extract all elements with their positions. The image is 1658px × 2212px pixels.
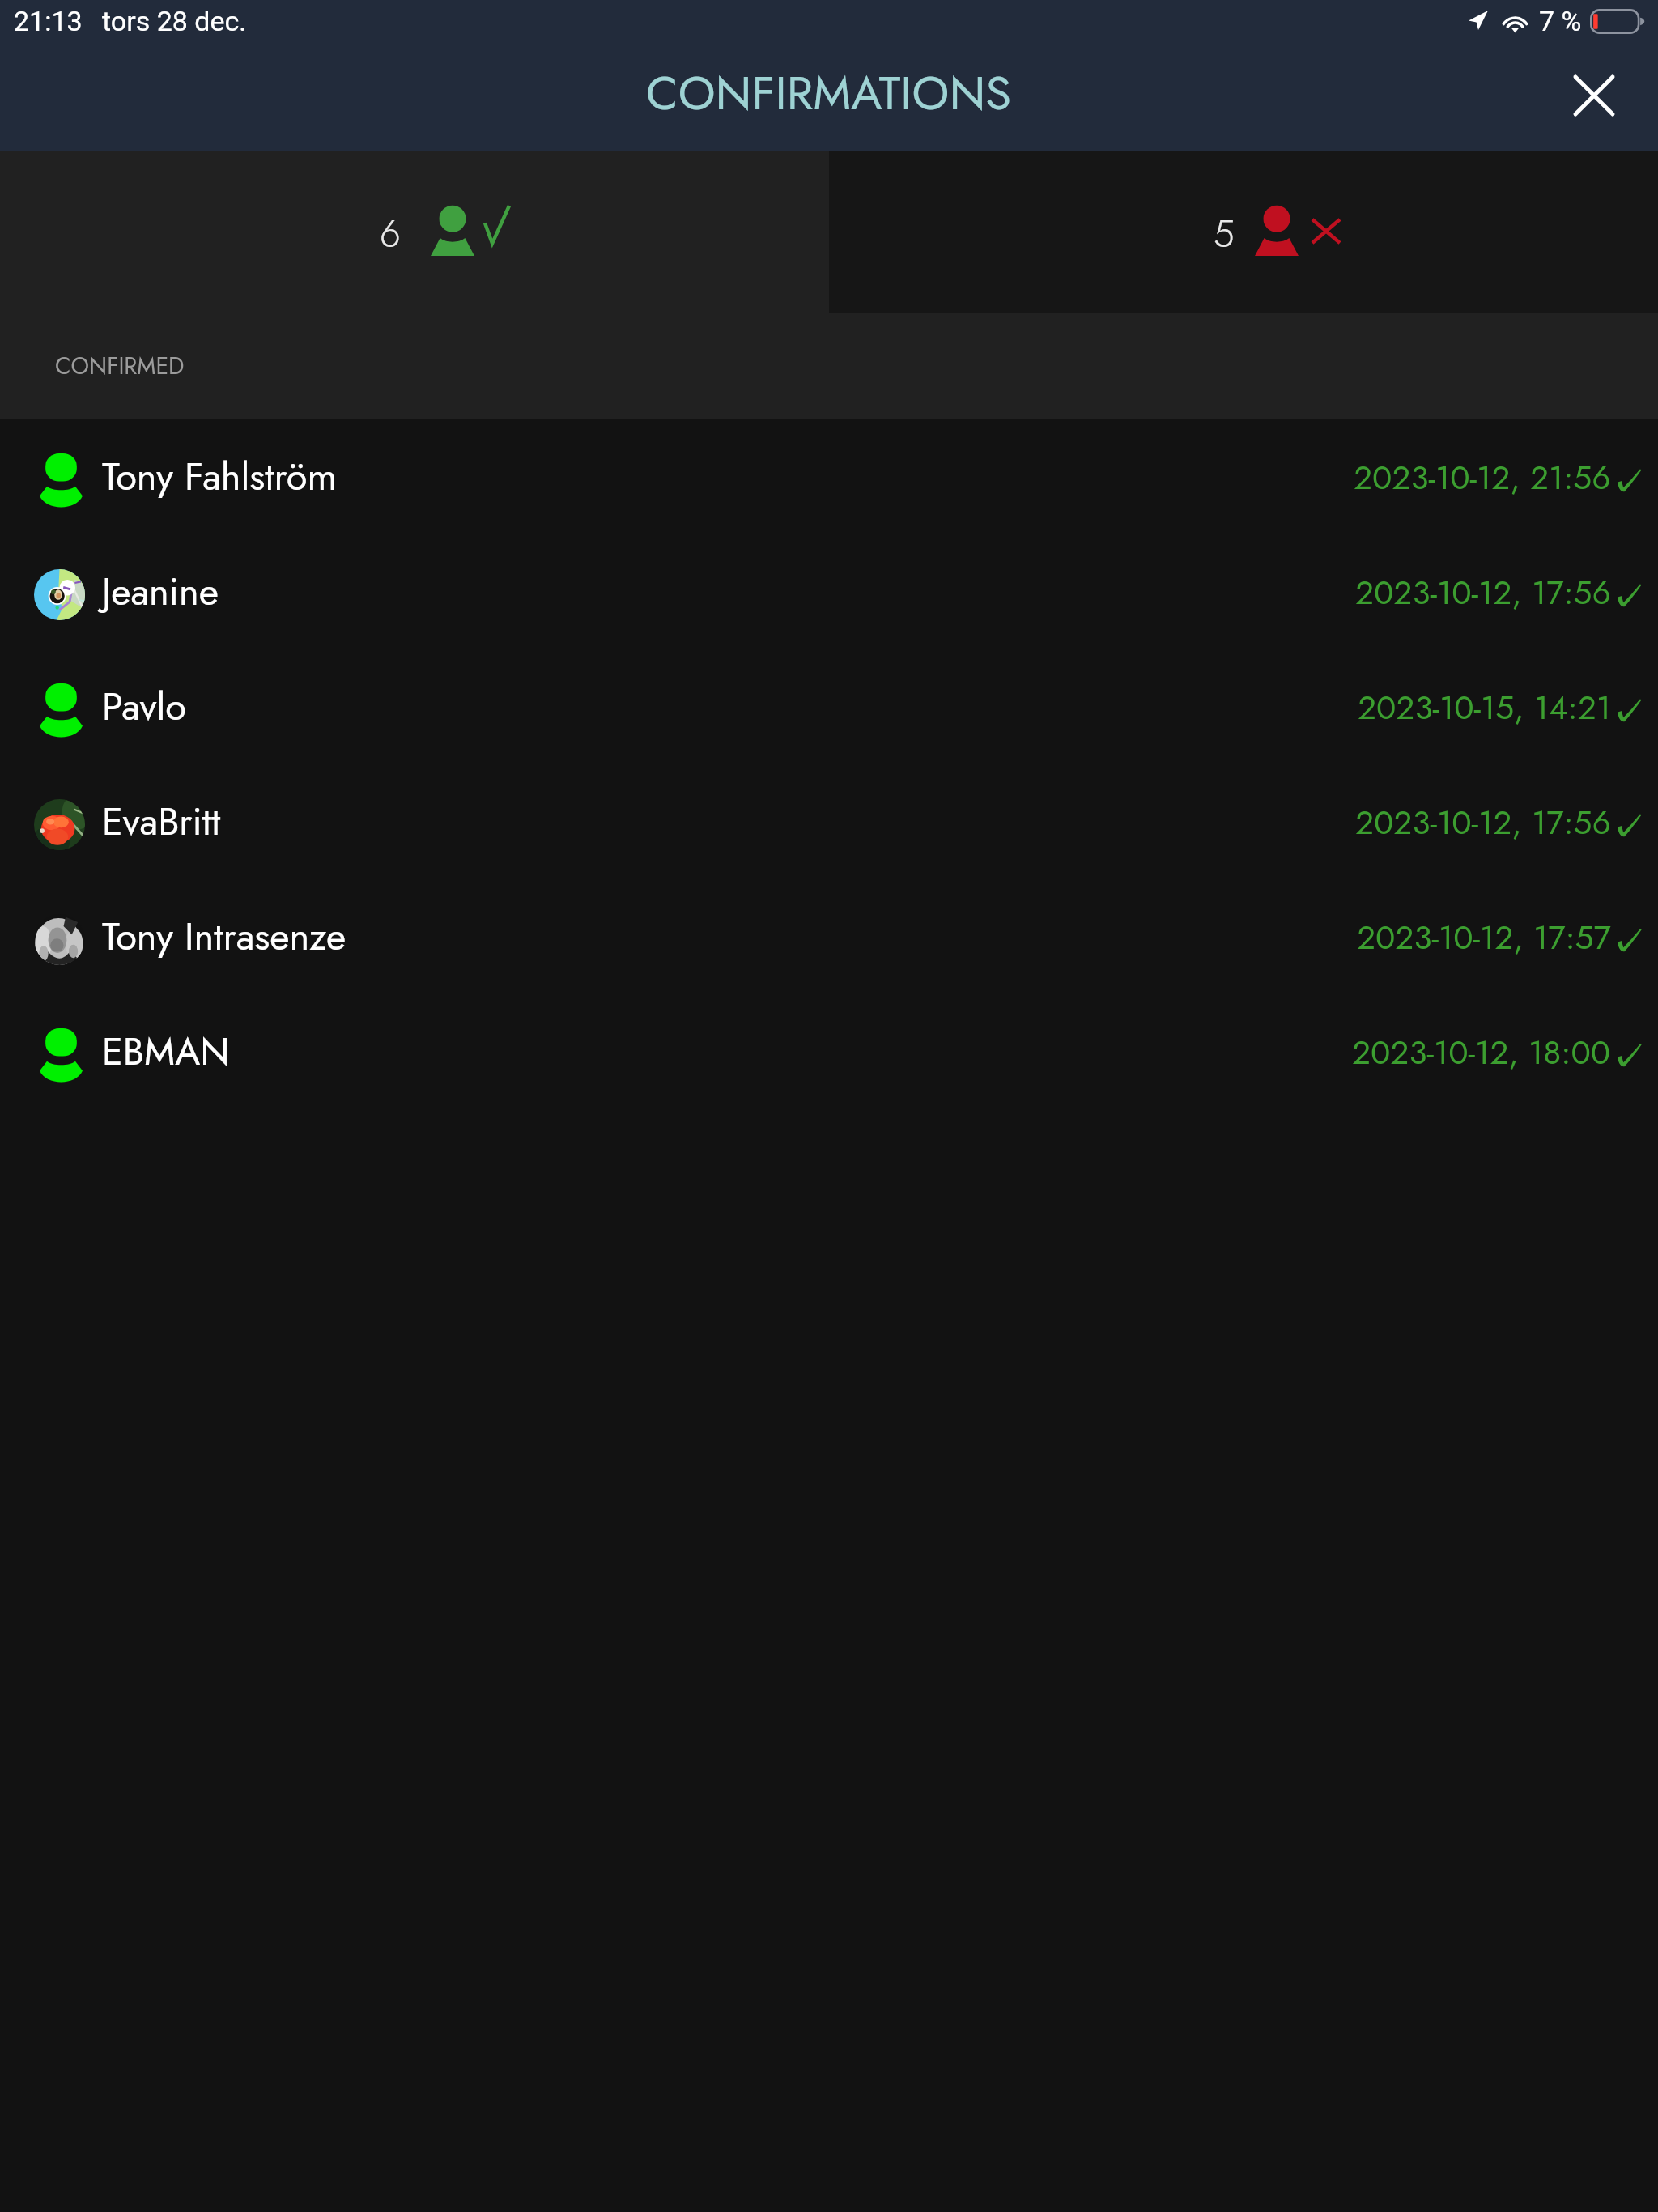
- staticText: tors 28 dec.: [102, 5, 247, 37]
- staticText: 2023-10-12, 17:56: [1355, 569, 1611, 617]
- staticText: 2023-10-15, 14:21: [1358, 684, 1611, 732]
- staticText: CONFIRMED: [55, 350, 185, 383]
- button[interactable]: 6 confirmed: [0, 151, 829, 313]
- staticText: 7 %: [1539, 5, 1582, 37]
- button[interactable]: Tony Fahlström: [0, 419, 1658, 534]
- button[interactable]: Close: [1552, 53, 1636, 138]
- staticText: Jeanine: [102, 564, 219, 619]
- button[interactable]: Pavlo: [0, 649, 1658, 764]
- staticText: 5: [1214, 207, 1235, 261]
- staticText: 2023-10-12, 17:56: [1355, 799, 1611, 847]
- staticText: EvaBritt: [102, 794, 221, 849]
- staticText: 21:13: [14, 5, 83, 37]
- staticText: CONFIRMATIONS: [646, 59, 1012, 127]
- button[interactable]: Jeanine: [0, 534, 1658, 649]
- staticText: 2023-10-12, 18:00: [1352, 1029, 1611, 1077]
- button[interactable]: 5 declined: [829, 151, 1658, 313]
- staticText: EBMAN: [102, 1024, 230, 1079]
- staticText: 2023-10-12, 17:57: [1357, 914, 1611, 962]
- staticText: 2023-10-12, 21:56: [1354, 454, 1611, 502]
- button[interactable]: EvaBritt: [0, 764, 1658, 879]
- button[interactable]: Tony Intrasenze: [0, 879, 1658, 994]
- staticText: 6: [380, 207, 401, 261]
- staticText: Tony Fahlström: [102, 449, 338, 504]
- button[interactable]: EBMAN: [0, 994, 1658, 1109]
- staticText: Pavlo: [102, 679, 186, 734]
- staticText: Tony Intrasenze: [102, 909, 346, 964]
